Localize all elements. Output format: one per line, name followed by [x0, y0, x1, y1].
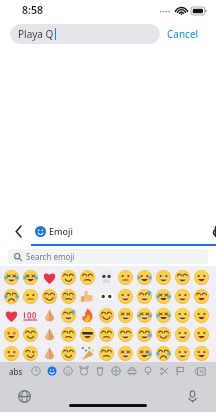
button[interactable] [59, 325, 78, 344]
button[interactable]: Activity [108, 362, 124, 380]
button[interactable] [40, 306, 59, 325]
button[interactable] [135, 344, 154, 362]
button[interactable] [78, 325, 97, 344]
button[interactable] [97, 325, 116, 344]
button[interactable] [2, 344, 21, 362]
button[interactable] [21, 306, 40, 325]
button[interactable] [97, 344, 116, 362]
button[interactable] [2, 287, 21, 306]
button[interactable] [40, 325, 59, 344]
button[interactable] [116, 325, 135, 344]
button[interactable] [192, 287, 211, 306]
button[interactable] [2, 268, 21, 287]
button[interactable] [173, 306, 192, 325]
button[interactable]: Flags [172, 362, 188, 380]
staticText: Playa Q [18, 27, 54, 41]
staticText: Cancel [167, 27, 199, 41]
button[interactable] [135, 287, 154, 306]
button[interactable] [135, 306, 154, 325]
button[interactable] [135, 268, 154, 287]
button[interactable] [78, 306, 97, 325]
button[interactable]: Backspace [188, 362, 212, 380]
button[interactable] [116, 268, 135, 287]
button[interactable] [135, 325, 154, 344]
button[interactable] [21, 344, 40, 362]
button[interactable]: Cancel [160, 23, 206, 45]
button[interactable] [78, 344, 97, 362]
button[interactable]: Playa Q [10, 24, 160, 44]
button[interactable] [116, 306, 135, 325]
button[interactable]: Recent [28, 362, 44, 380]
button[interactable] [154, 325, 173, 344]
button[interactable]: Change language [14, 386, 34, 406]
button[interactable]: Food [76, 362, 92, 380]
button[interactable] [173, 287, 192, 306]
button[interactable]: Drink [92, 362, 108, 380]
button[interactable]: Voice input [182, 386, 202, 406]
button[interactable] [173, 268, 192, 287]
button[interactable] [2, 306, 21, 325]
button[interactable] [78, 287, 97, 306]
button[interactable] [21, 325, 40, 344]
button[interactable] [192, 306, 211, 325]
button[interactable]: Objects [140, 362, 156, 380]
staticText: Emoji [49, 225, 73, 237]
button[interactable] [116, 344, 135, 362]
staticText: 8:58 [22, 3, 43, 17]
button[interactable] [40, 287, 59, 306]
button[interactable] [2, 325, 21, 344]
button[interactable]: Search emoji [8, 249, 208, 264]
staticText: abs [9, 366, 23, 377]
button[interactable] [21, 287, 40, 306]
button[interactable] [97, 268, 116, 287]
button[interactable] [192, 268, 211, 287]
button[interactable] [173, 325, 192, 344]
button[interactable] [40, 268, 59, 287]
button[interactable] [40, 344, 59, 362]
button[interactable] [154, 344, 173, 362]
button[interactable]: Emoji [31, 216, 216, 246]
button[interactable] [59, 287, 78, 306]
button[interactable] [154, 268, 173, 287]
button[interactable]: Travel [124, 362, 140, 380]
button[interactable] [59, 344, 78, 362]
button[interactable] [59, 268, 78, 287]
button[interactable] [78, 268, 97, 287]
button[interactable] [192, 325, 211, 344]
button[interactable] [154, 306, 173, 325]
button[interactable]: Symbols [156, 362, 172, 380]
button[interactable] [97, 306, 116, 325]
button[interactable] [21, 268, 40, 287]
button[interactable] [59, 306, 78, 325]
button[interactable]: abs [4, 362, 28, 380]
button[interactable] [97, 287, 116, 306]
button[interactable] [116, 287, 135, 306]
button[interactable] [154, 287, 173, 306]
button[interactable]: Back [10, 223, 26, 239]
button[interactable]: Animals [60, 362, 76, 380]
button[interactable] [192, 344, 211, 362]
button[interactable]: Smileys [44, 362, 60, 380]
button[interactable] [173, 344, 192, 362]
staticText: Search emoji [26, 251, 75, 262]
